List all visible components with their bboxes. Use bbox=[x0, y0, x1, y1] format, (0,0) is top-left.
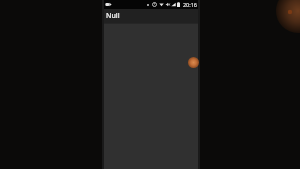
button[interactable]: Null bbox=[102, 9, 200, 23]
button[interactable]: Action button bbox=[188, 57, 199, 68]
staticText: 20:16 bbox=[182, 1, 197, 8]
staticText: Null bbox=[106, 11, 120, 21]
